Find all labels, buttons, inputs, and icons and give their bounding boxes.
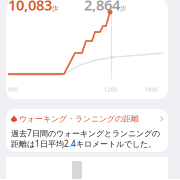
staticText: 0:00 [8, 86, 18, 93]
button[interactable]: ウォーキング・ランニングの距離 [6, 109, 168, 154]
staticText: 18:00 [145, 86, 158, 93]
staticText: 10,083 [8, 0, 52, 14]
staticText: 2,864 [84, 0, 120, 14]
staticText: 12:00 [104, 86, 117, 93]
staticText: 歩 [120, 4, 127, 12]
staticText: ウォーキング・ランニングの距離 [19, 114, 139, 124]
staticText: 過去7日間のウォーキングとランニングの距離は1日平均2.4キロメートルでした。 [11, 128, 160, 149]
staticText: 歩 [52, 4, 59, 12]
